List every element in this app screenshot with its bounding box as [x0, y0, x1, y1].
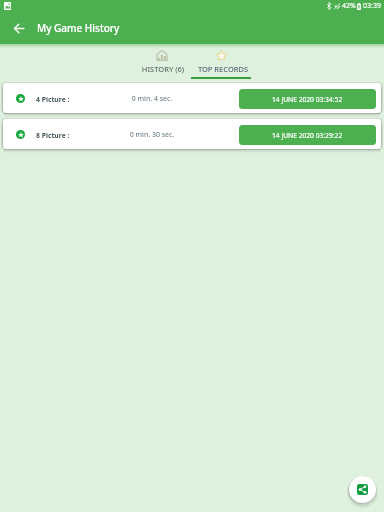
- staticText: 0 min. 4 sec.: [110, 94, 194, 104]
- button[interactable]: 14 JUNE 2020 03:34:52: [239, 89, 376, 109]
- staticText: 14 JUNE 2020 03:29:22: [272, 131, 343, 140]
- staticText: HISTORY (6): [133, 64, 193, 74]
- button[interactable]: HISTORY (6): [131, 45, 191, 79]
- staticText: 4 Picture :: [36, 95, 70, 104]
- button[interactable]: TOP RECORDS: [191, 45, 251, 79]
- staticText: 03:39: [363, 1, 381, 11]
- staticText: 42%: [342, 1, 356, 11]
- staticText: My Game History: [37, 21, 120, 35]
- staticText: 8 Picture :: [36, 131, 70, 140]
- staticText: 14 JUNE 2020 03:34:52: [272, 95, 343, 104]
- button[interactable]: Share: [349, 476, 376, 503]
- button[interactable]: 4 Picture :: [3, 83, 381, 113]
- button[interactable]: 8 Picture :: [3, 119, 381, 149]
- button[interactable]: Back: [8, 17, 30, 39]
- staticText: TOP RECORDS: [193, 64, 253, 74]
- staticText: 0 min. 30 sec.: [110, 130, 194, 140]
- button[interactable]: 14 JUNE 2020 03:29:22: [239, 125, 376, 145]
